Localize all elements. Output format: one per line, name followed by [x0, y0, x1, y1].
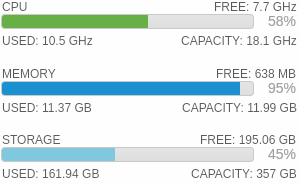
button[interactable]: CPU — [0, 0, 300, 48]
staticText: CAPACITY: 18.1 GHz — [181, 34, 297, 47]
staticText: CAPACITY: 11.99 GB — [182, 101, 297, 114]
staticText: FREE: 638 MB — [216, 67, 297, 80]
staticText: 58% — [268, 13, 297, 29]
staticText: 95% — [268, 80, 297, 96]
staticText: CPU — [2, 0, 28, 13]
staticText: USED: 11.37 GB — [2, 101, 92, 114]
staticText: STORAGE — [2, 133, 61, 146]
staticText: MEMORY — [2, 67, 56, 80]
staticText: FREE: 195.06 GB — [200, 133, 297, 146]
button[interactable]: MEMORY — [0, 67, 300, 115]
staticText: USED: 161.94 GB — [2, 167, 100, 180]
staticText: FREE: 7.7 GHz — [214, 0, 297, 13]
staticText: CAPACITY: 357 GB — [191, 167, 297, 180]
button[interactable]: STORAGE — [0, 133, 300, 181]
staticText: USED: 10.5 GHz — [2, 34, 93, 47]
staticText: 45% — [268, 146, 297, 162]
